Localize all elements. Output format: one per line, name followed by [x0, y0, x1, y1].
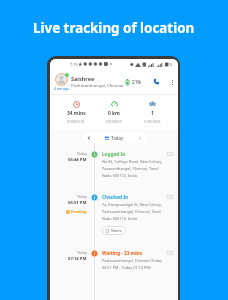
staticText: Pending — [71, 209, 87, 214]
staticText: DISTANCE — [106, 119, 122, 124]
staticText: Notes — [111, 228, 122, 233]
staticText: Logged In — [102, 151, 126, 157]
staticText: Pazavanthangal, Chennai, Tamil — [102, 166, 159, 173]
staticText: CHECKINS — [144, 119, 161, 124]
staticText: DURATION — [67, 119, 85, 124]
staticText: 7a, Elangovadigal St, New Colony, — [102, 202, 162, 209]
staticText: 07:14 PM — [68, 256, 87, 262]
staticText: Saishree — [71, 75, 95, 82]
button[interactable]: More options — [170, 76, 175, 88]
staticText: Today — [77, 151, 87, 156]
button[interactable]: Call — [152, 77, 161, 86]
staticText: Checked In — [102, 194, 129, 200]
staticText: Pazhavanthangal, Chennai (Today — [102, 258, 163, 265]
button[interactable]: Today — [50, 151, 178, 180]
button[interactable]: Today — [82, 132, 147, 143]
button[interactable]: 1 — [133, 101, 171, 124]
staticText: 1 — [151, 110, 154, 117]
staticText: Nadu 600114, India — [102, 173, 137, 180]
staticText: Pazhavanthangal, Chennai — [71, 83, 124, 89]
staticText: 06:44 PM — [68, 157, 87, 163]
staticText: Today — [111, 135, 124, 141]
staticText: Pazhuvanthangal, Chennai, Tamil — [102, 209, 162, 216]
staticText: Today — [77, 194, 87, 199]
button[interactable]: Notes — [102, 226, 126, 235]
staticText: 21% — [132, 79, 142, 85]
staticText: 06:51 PM - Today 07:14 PM) — [102, 265, 151, 272]
staticText: 06:51 PM — [68, 200, 87, 206]
staticText: No 82, College Road, New Colony, — [102, 159, 162, 166]
staticText: Today — [77, 250, 87, 255]
button[interactable]: Today — [50, 194, 178, 235]
staticText: 34 mins — [67, 110, 86, 117]
staticText: Live tracking of location — [33, 19, 195, 37]
button[interactable]: 34 mins — [57, 101, 95, 124]
staticText: 0 km — [108, 110, 120, 117]
staticText: 7:19 — [70, 62, 78, 67]
button[interactable]: 0 km — [95, 101, 133, 124]
staticText: Waiting - 23 mins — [102, 250, 142, 256]
staticText: Nadu 600114, India — [102, 216, 137, 223]
staticText: 4 min ago — [54, 87, 69, 91]
button[interactable]: Today — [50, 250, 178, 272]
staticText: 21% — [165, 62, 173, 67]
